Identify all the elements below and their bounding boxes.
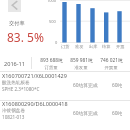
- button[interactable]: 893 688吨: [36, 57, 66, 70]
- staticText: X160800290/D6L0000418: [2, 100, 68, 107]
- staticText: SPHE 2.3*1080*C: [2, 86, 40, 92]
- staticText: 准发量: [74, 65, 88, 70]
- staticText: 结算: [102, 44, 111, 49]
- button[interactable]: X160800290/D6L0000418: [0, 100, 130, 128]
- staticText: 60结算完成: [73, 110, 98, 117]
- staticText: 60结算完成: [73, 82, 98, 89]
- staticText: 859 981吨: [70, 57, 93, 64]
- button[interactable]: X160700721/X6L0001429: [0, 72, 130, 100]
- staticText: 60吨: [112, 82, 123, 89]
- staticText: 10821-013: [2, 114, 25, 120]
- button[interactable]: 746 021吨: [96, 57, 126, 70]
- staticText: 开票: [116, 44, 125, 49]
- button[interactable]: 859 981吨: [66, 57, 96, 70]
- staticText: 2016-11: [4, 60, 25, 68]
- staticText: 订货: [61, 44, 70, 49]
- button[interactable]: 交付率: [0, 17, 46, 45]
- staticText: 500: [49, 19, 56, 24]
- staticText: 893 688吨: [40, 57, 63, 64]
- staticText: X160700721/X6L0001429: [2, 72, 67, 79]
- staticText: 交付率: [9, 20, 25, 27]
- staticText: 746 021吨: [100, 57, 123, 64]
- staticText: 订货量: [44, 65, 58, 70]
- staticText: 准发: [75, 44, 84, 49]
- staticText: 83. 5%: [7, 29, 44, 45]
- staticText: 冷镀钢盘卷: [2, 108, 25, 114]
- staticText: 60吨: [112, 110, 123, 117]
- staticText: 开票量: [104, 65, 118, 70]
- staticText: 1000: [47, 0, 57, 3]
- staticText: 0: [55, 40, 58, 45]
- staticText: 酸洗热轧板卷: [2, 80, 30, 86]
- button[interactable]: Back: [8, 0, 21, 12]
- staticText: 出库: [89, 44, 98, 49]
